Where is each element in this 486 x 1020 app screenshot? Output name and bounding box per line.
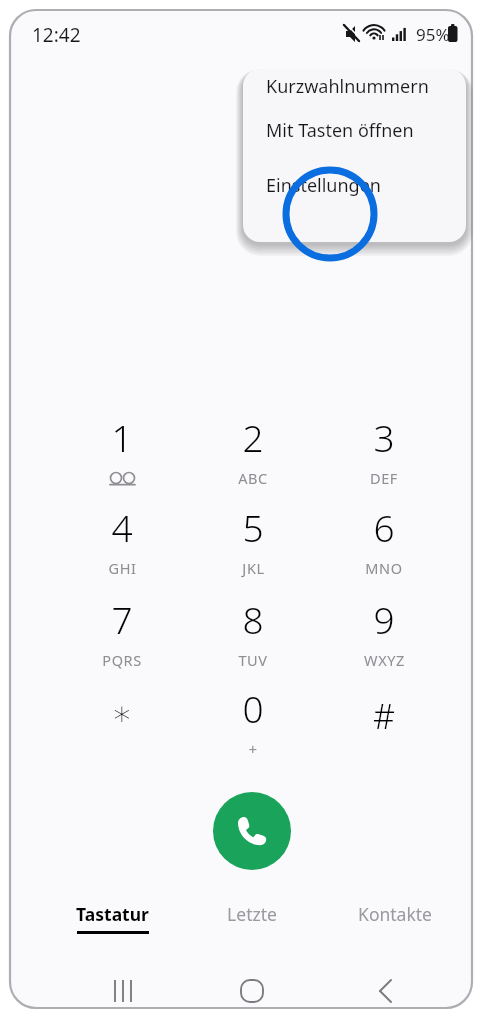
staticText: 12:42 [32, 22, 81, 48]
staticText: ∗ [111, 693, 133, 733]
button[interactable]: 8 [197, 590, 309, 674]
button[interactable]: 2 [197, 408, 309, 492]
staticText: Mit Tasten öffnen [266, 118, 414, 143]
button[interactable]: ∗ [66, 679, 178, 763]
button[interactable]: 5 [197, 498, 309, 582]
staticText: Einstellungen [266, 173, 381, 198]
button[interactable]: 6 [328, 498, 440, 582]
staticText: # [373, 693, 395, 739]
button[interactable]: Kontakte [325, 902, 465, 948]
staticText: 5 [242, 502, 264, 552]
button[interactable]: 3 [328, 408, 440, 492]
button[interactable]: Recent apps [88, 962, 158, 1008]
staticText: DEF [370, 468, 398, 488]
button[interactable]: Call [213, 792, 291, 870]
staticText: Kontakte [358, 902, 432, 926]
staticText: Letzte [227, 902, 277, 926]
button[interactable]: Tastatur [42, 902, 182, 948]
staticText: Tastatur [76, 902, 149, 926]
staticText: 95% [416, 23, 450, 46]
button[interactable]: Letzte [182, 902, 322, 948]
staticText: PQRS [102, 650, 142, 670]
button[interactable]: 9 [328, 590, 440, 674]
staticText: 3 [373, 412, 395, 462]
staticText: + [248, 739, 258, 759]
button[interactable]: Back [348, 962, 418, 1008]
staticText: Kurzwahlnummern [266, 74, 429, 99]
button[interactable]: # [328, 679, 440, 763]
staticText: JKL [242, 558, 265, 578]
staticText: WXYZ [364, 650, 405, 670]
staticText: 1 [111, 412, 133, 462]
staticText: 2 [242, 412, 264, 462]
staticText: 0 [242, 683, 264, 733]
button[interactable]: Kurzwahlnummern [243, 69, 466, 103]
staticText: 6 [373, 502, 395, 552]
staticText: 8 [242, 594, 264, 644]
staticText: 4 [111, 502, 133, 552]
button[interactable]: Mit Tasten öffnen [243, 103, 466, 158]
staticText: TUV [238, 650, 268, 670]
staticText: MNO [365, 558, 403, 578]
button[interactable]: 0 [197, 679, 309, 763]
button[interactable]: 7 [66, 590, 178, 674]
staticText: 7 [111, 594, 133, 644]
button[interactable]: 1 [66, 408, 178, 492]
button[interactable]: Home [217, 962, 287, 1008]
staticText: 9 [373, 594, 395, 644]
button[interactable]: 4 [66, 498, 178, 582]
button[interactable]: Einstellungen [243, 158, 466, 213]
staticText: ABC [238, 468, 268, 488]
staticText: GHI [108, 558, 137, 578]
